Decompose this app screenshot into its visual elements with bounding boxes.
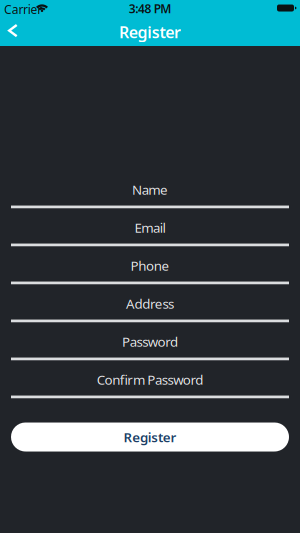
staticText: Register	[119, 21, 181, 43]
button[interactable]: Email	[0, 207, 300, 245]
button[interactable]: Back	[0, 20, 32, 46]
staticText: Name	[132, 181, 168, 198]
button[interactable]: Confirm Password	[0, 359, 300, 397]
staticText: Address	[126, 295, 174, 312]
button[interactable]: Password	[0, 321, 300, 359]
button[interactable]: Phone	[0, 245, 300, 283]
staticText: Carrier	[4, 1, 42, 17]
staticText: Email	[135, 219, 165, 236]
staticText: Confirm Password	[97, 371, 203, 388]
staticText: Password	[122, 333, 178, 350]
button[interactable]: Register	[11, 422, 289, 451]
staticText: Register	[123, 428, 176, 446]
button[interactable]: Name	[0, 169, 300, 207]
staticText: Phone	[131, 257, 169, 274]
staticText: 3:48 PM	[129, 1, 171, 16]
button[interactable]: Address	[0, 283, 300, 321]
